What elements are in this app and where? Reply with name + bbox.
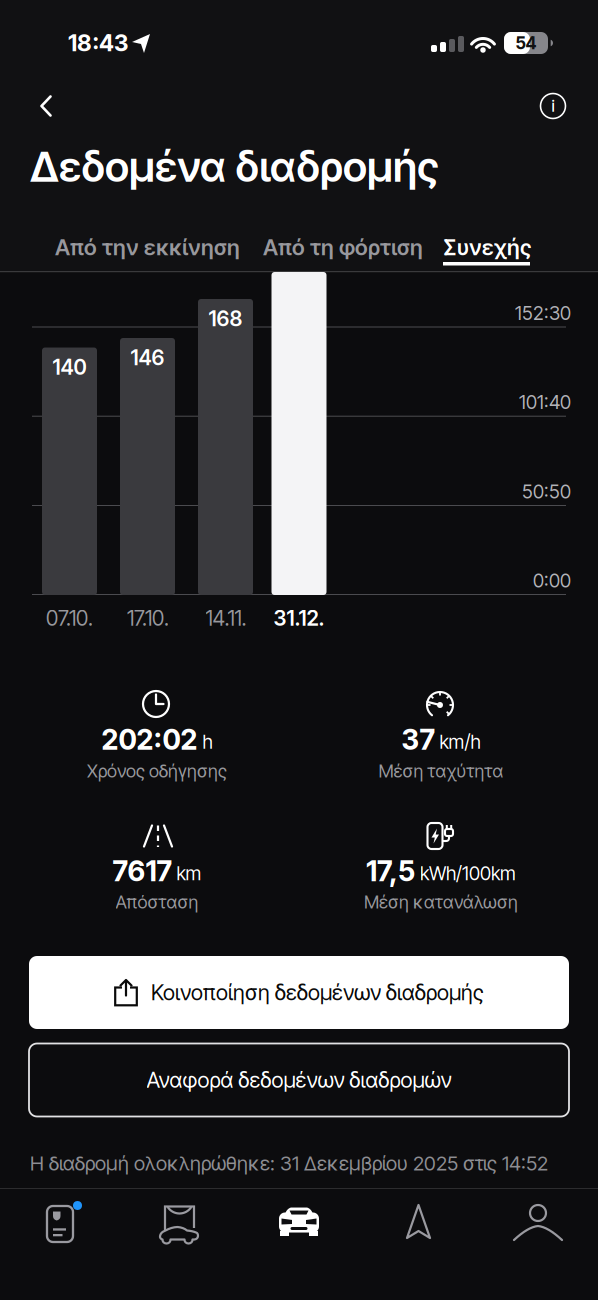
- staticText: 37: [401, 723, 434, 756]
- button[interactable]: Info: [540, 93, 565, 118]
- staticText: kWh/100km: [420, 862, 516, 885]
- staticText: 0:00: [533, 569, 571, 592]
- button[interactable]: Navigation: [383, 1194, 453, 1254]
- button[interactable]: 31.12.: [249, 605, 349, 631]
- staticText: 17,5: [366, 854, 415, 888]
- staticText: Απόσταση: [115, 891, 198, 913]
- staticText: 101:40: [519, 391, 571, 414]
- staticText: 14.11.: [205, 605, 246, 631]
- staticText: Δεδομένα διαδρομής: [30, 141, 439, 192]
- button[interactable]: Από την εκκίνηση: [55, 234, 240, 261]
- staticText: Συνεχής: [443, 234, 531, 261]
- staticText: 54: [515, 33, 536, 53]
- staticText: 17.10.: [127, 605, 169, 631]
- button[interactable]: Profile: [503, 1194, 573, 1254]
- button[interactable]: 07.10.: [19, 605, 119, 631]
- staticText: Η διαδρομή ολοκληρώθηκε: 31 Δεκεμβρίου 2…: [30, 1151, 548, 1175]
- staticText: 140: [52, 354, 86, 380]
- staticText: 168: [208, 306, 242, 331]
- staticText: 18:43: [68, 29, 128, 57]
- button[interactable]: My car: [264, 1194, 334, 1254]
- staticText: Από τη φόρτιση: [263, 234, 423, 261]
- button[interactable]: Συνεχής: [443, 234, 531, 261]
- staticText: Από την εκκίνηση: [55, 234, 240, 261]
- staticText: 146: [130, 345, 164, 370]
- staticText: 202:02: [101, 723, 197, 756]
- button[interactable]: Αναφορά δεδομένων διαδρομών: [29, 1043, 569, 1116]
- staticText: 152:30: [515, 301, 571, 324]
- button[interactable]: Vehicle pass: [25, 1194, 95, 1254]
- staticText: Χρόνος οδήγησης: [87, 760, 227, 782]
- button[interactable]: Garage: [144, 1194, 214, 1254]
- button[interactable]: Κοινοποίηση δεδομένων διαδρομής: [29, 956, 569, 1029]
- staticText: Μέση ταχύτητα: [378, 760, 503, 782]
- staticText: 07.10.: [46, 605, 93, 631]
- staticText: Κοινοποίηση δεδομένων διαδρομής: [151, 979, 484, 1005]
- button[interactable]: 17.10.: [98, 605, 198, 631]
- button[interactable]: Back: [23, 84, 67, 128]
- staticText: Αναφορά δεδομένων διαδρομών: [146, 1067, 451, 1093]
- staticText: 50:50: [522, 480, 571, 503]
- staticText: h: [202, 730, 212, 753]
- staticText: 31.12.: [273, 605, 324, 631]
- button[interactable]: 14.11.: [176, 605, 276, 631]
- staticText: 7617: [112, 854, 171, 888]
- staticText: km: [176, 862, 201, 885]
- staticText: i: [551, 96, 554, 116]
- staticText: Μέση κατανάλωση: [364, 891, 518, 913]
- button[interactable]: Από τη φόρτιση: [263, 234, 423, 261]
- staticText: km/h: [439, 730, 480, 753]
